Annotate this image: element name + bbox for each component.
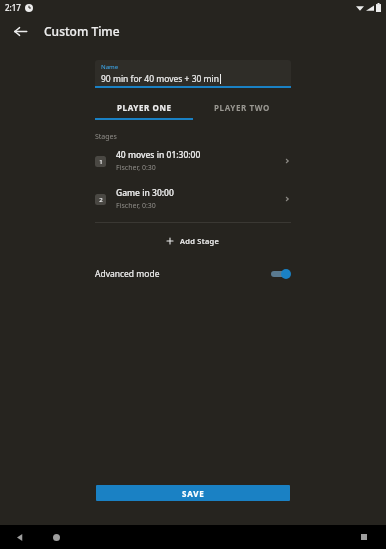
staticText: 40 moves in 01:30:00 [116, 149, 201, 161]
staticText: 1 [99, 158, 103, 166]
staticText: 90 min for 40 moves + 30 min [101, 73, 219, 85]
button[interactable]: Home [48, 529, 64, 545]
staticText: PLAYER TWO [214, 102, 270, 113]
button[interactable]: Advanced mode [0, 263, 386, 285]
staticText: Fischer, 0:30 [116, 163, 156, 173]
button[interactable]: 2 [95, 186, 291, 212]
button[interactable]: Back [12, 529, 28, 545]
button[interactable]: Name [95, 60, 291, 86]
button[interactable]: 1 [95, 148, 291, 174]
button[interactable]: Back [6, 17, 34, 45]
staticText: Fischer, 0:30 [116, 201, 156, 211]
staticText: Name [101, 63, 119, 71]
button[interactable]: SAVE [96, 485, 290, 501]
staticText: Advanced mode [95, 268, 269, 280]
staticText: Stages [95, 132, 117, 142]
staticText: SAVE [182, 488, 205, 499]
staticText: Custom Time [44, 23, 120, 39]
staticText: Add Stage [180, 236, 220, 246]
button[interactable]: PLAYER TWO [193, 96, 291, 118]
button[interactable]: PLAYER ONE [95, 96, 193, 118]
button[interactable]: Add Stage [158, 233, 228, 249]
button[interactable]: Recent apps [356, 529, 372, 545]
staticText: 2:17 [5, 2, 21, 13]
staticText: Game in 30:00 [116, 187, 174, 199]
staticText: 2 [99, 196, 103, 204]
staticText: PLAYER ONE [117, 102, 172, 113]
